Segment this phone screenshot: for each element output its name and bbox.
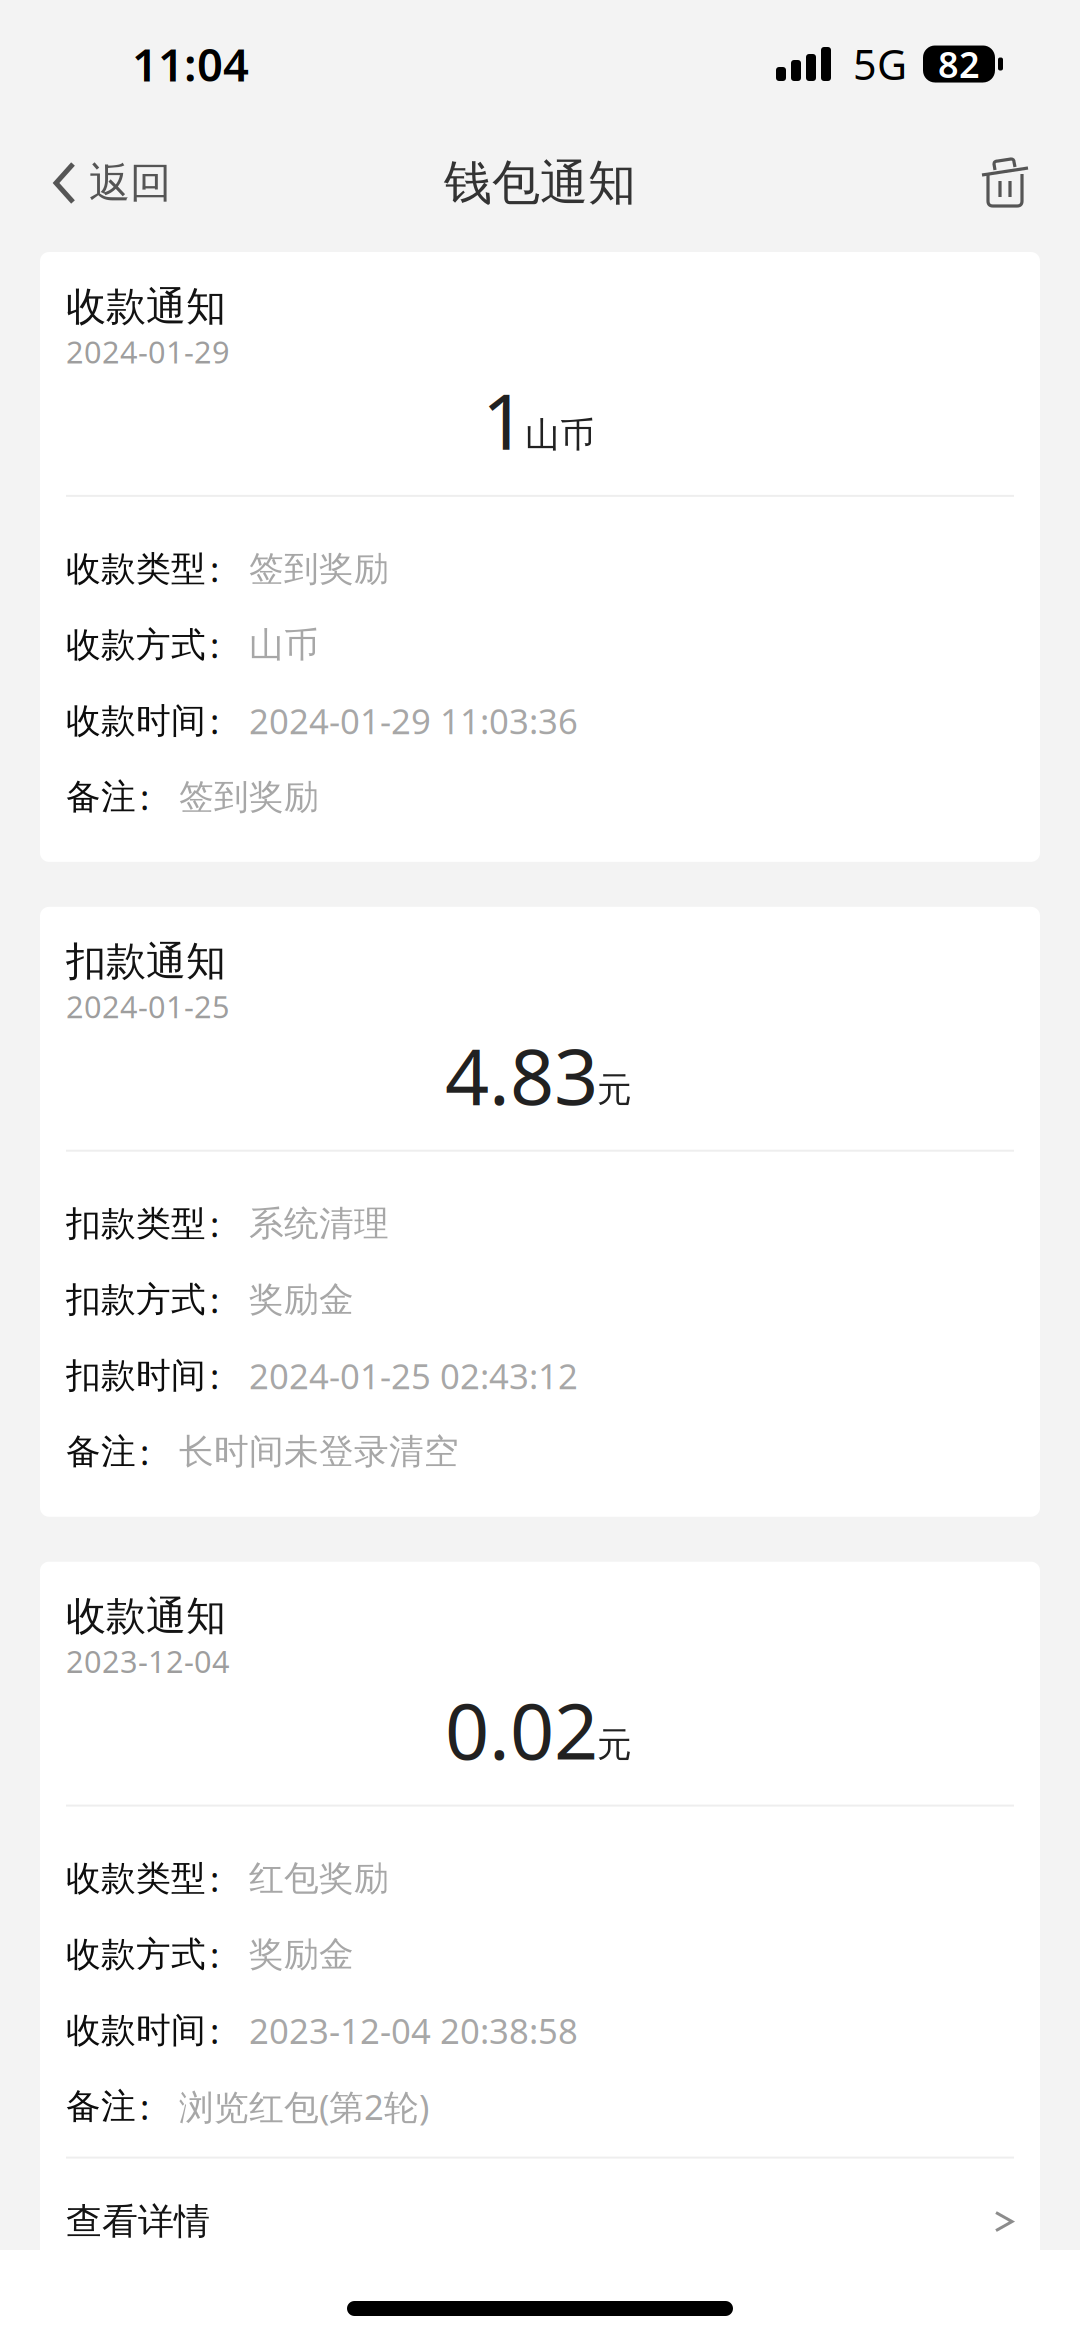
staticText: 签到奖励 [179, 776, 319, 818]
staticText: 2024-01-29 11:03:36 [249, 698, 578, 744]
staticText: 1 [482, 368, 526, 471]
staticText: : [210, 698, 219, 744]
staticText: 备注 [66, 1430, 136, 1473]
staticText: 收款时间 [66, 2009, 206, 2052]
staticText: 元 [597, 1723, 632, 1766]
staticText: 返回 [89, 158, 171, 208]
staticText: 收款类型 [66, 1857, 206, 1900]
staticText: 收款通知 [66, 1592, 226, 1641]
staticText: 5G [853, 37, 907, 91]
staticText: 奖励金 [249, 1933, 354, 1976]
staticText: : [210, 1201, 219, 1247]
staticText: : [140, 2083, 149, 2129]
staticText: : [210, 622, 219, 668]
staticText: 元 [597, 1068, 632, 1111]
staticText: 收款方式 [66, 624, 206, 666]
staticText: 收款通知 [66, 282, 226, 331]
staticText: 长时间未登录清空 [179, 1430, 459, 1473]
staticText: : [210, 1931, 219, 1977]
staticText: 浏览红包(第2轮) [179, 2083, 429, 2129]
staticText: : [210, 1277, 219, 1323]
staticText: 收款方式 [66, 1933, 206, 1976]
staticText: 2023-12-04 [66, 1641, 230, 1681]
staticText: 4.83 [445, 1023, 598, 1126]
staticText: 奖励金 [249, 1278, 354, 1321]
staticText: : [210, 2007, 219, 2053]
staticText: 红包奖励 [249, 1857, 389, 1900]
button[interactable]: 返回 [0, 128, 195, 238]
button[interactable]: Delete [981, 128, 1080, 238]
staticText: 2024-01-25 02:43:12 [249, 1353, 578, 1399]
staticText: 扣款类型 [66, 1202, 206, 1245]
staticText: 2024-01-29 [66, 331, 230, 372]
staticText: 钱包通知 [444, 153, 636, 212]
staticText: : [140, 1429, 149, 1475]
staticText: 备注 [66, 776, 136, 818]
staticText: 2024-01-25 [66, 986, 230, 1027]
staticText: 11:04 [132, 34, 249, 94]
staticText: 备注 [66, 2085, 136, 2128]
staticText: 山币 [525, 414, 595, 456]
staticText: 山币 [249, 624, 319, 666]
staticText: : [210, 1855, 219, 1901]
staticText: : [140, 774, 149, 820]
staticText: : [210, 546, 219, 592]
staticText: 0.02 [445, 1678, 598, 1781]
staticText: 系统清理 [249, 1202, 389, 1245]
staticText: : [210, 1353, 219, 1399]
staticText: 82 [938, 40, 980, 88]
staticText: 扣款时间 [66, 1354, 206, 1397]
staticText: 收款时间 [66, 700, 206, 742]
staticText: 查看详情 [66, 2199, 210, 2244]
staticText: 2023-12-04 20:38:58 [249, 2007, 578, 2053]
staticText: 收款类型 [66, 548, 206, 590]
staticText: 扣款通知 [66, 937, 226, 986]
button[interactable]: 查看详情 [40, 2159, 1040, 2285]
staticText: 扣款方式 [66, 1278, 206, 1321]
staticText: 签到奖励 [249, 548, 389, 590]
